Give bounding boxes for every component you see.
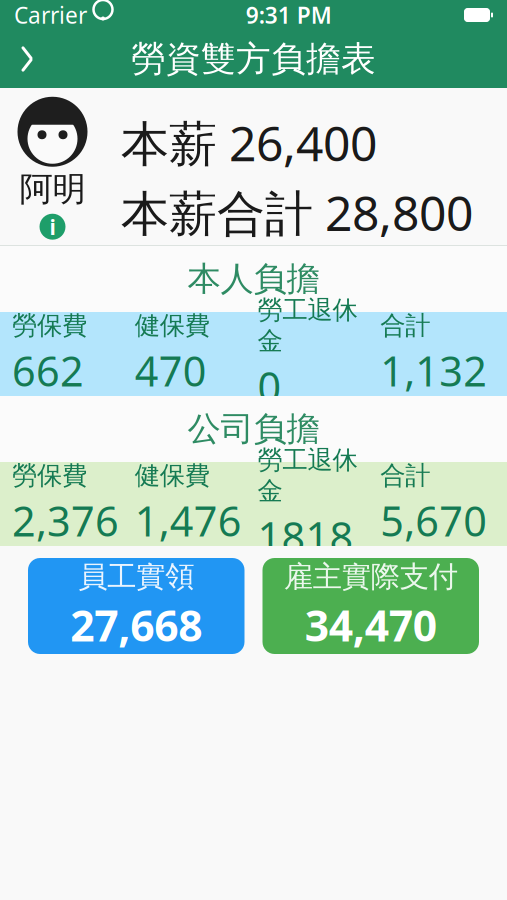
staticText: 本薪 26,400: [121, 111, 377, 174]
staticText: 0: [257, 359, 281, 414]
button[interactable]: 員工實領: [28, 558, 244, 654]
staticText: 雇主實際支付: [284, 559, 458, 595]
staticText: 470: [135, 343, 207, 398]
staticText: 34,470: [305, 597, 437, 653]
staticText: 本人負擔: [187, 258, 319, 299]
staticText: 健保費: [135, 310, 210, 341]
staticText: 合計: [380, 460, 430, 491]
button[interactable]: 雇主實際支付: [262, 558, 479, 654]
staticText: 員工實領: [78, 559, 194, 595]
staticText: 1,132: [380, 343, 487, 398]
staticText: 勞工退休金: [257, 444, 357, 507]
staticText: 本薪合計 28,800: [121, 180, 473, 244]
staticText: 公司負擔: [187, 408, 319, 449]
staticText: 阿明: [19, 169, 85, 210]
staticText: 27,668: [70, 597, 202, 653]
button[interactable]: Info: [37, 212, 67, 242]
staticText: 5,670: [380, 493, 487, 548]
staticText: 9:31 PM: [246, 0, 332, 30]
staticText: 勞保費: [12, 310, 87, 341]
staticText: 662: [12, 343, 84, 398]
staticText: 1,476: [135, 493, 242, 548]
button[interactable]: Back: [0, 30, 54, 88]
staticText: 2,376: [12, 493, 119, 548]
staticText: 勞保費: [12, 460, 87, 491]
staticText: i: [49, 212, 55, 241]
staticText: 勞資雙方負擔表: [131, 38, 376, 80]
staticText: 合計: [380, 310, 430, 341]
staticText: 1818: [257, 509, 353, 564]
staticText: 勞工退休金: [257, 294, 357, 357]
staticText: Carrier: [14, 0, 87, 30]
staticText: 健保費: [135, 460, 210, 491]
